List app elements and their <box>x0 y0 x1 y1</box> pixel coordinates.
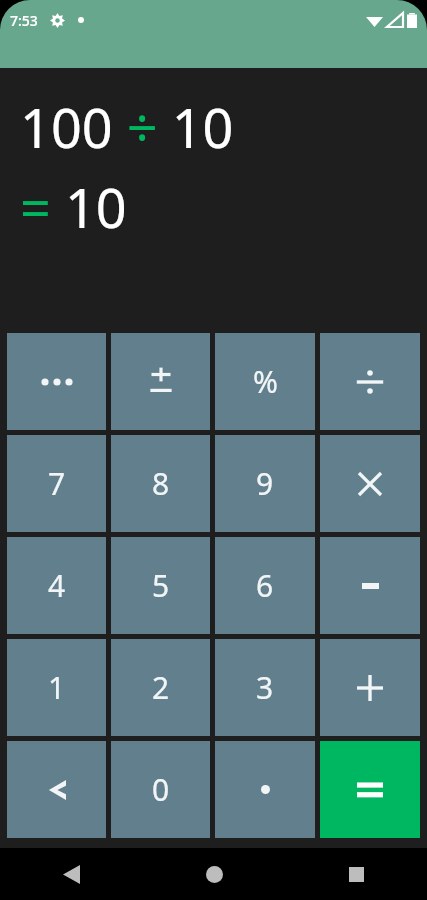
button[interactable]: Multiply <box>320 435 420 532</box>
button[interactable]: Recent apps <box>285 848 427 900</box>
staticText: = 10 <box>20 170 127 244</box>
button[interactable]: Plus <box>320 639 420 736</box>
staticText: 5 <box>152 565 170 606</box>
button[interactable]: Home <box>143 848 285 900</box>
staticText: 100 ÷ 10 <box>20 90 234 164</box>
button[interactable]: 2 <box>111 639 210 736</box>
button[interactable]: 7 <box>7 435 106 532</box>
button[interactable]: 4 <box>7 537 106 634</box>
staticText: 4 <box>48 565 66 606</box>
staticText: 8 <box>152 463 170 504</box>
button[interactable]: Divide <box>320 333 420 430</box>
button[interactable]: Equals <box>320 741 420 838</box>
button[interactable]: 6 <box>215 537 315 634</box>
button[interactable]: 0 <box>111 741 210 838</box>
button[interactable]: Minus <box>320 537 420 634</box>
button[interactable]: 9 <box>215 435 315 532</box>
button[interactable]: 5 <box>111 537 210 634</box>
button[interactable]: 8 <box>111 435 210 532</box>
button[interactable]: Decimal point <box>215 741 315 838</box>
button[interactable]: Backspace <box>7 741 106 838</box>
staticText: 9 <box>256 463 274 504</box>
staticText: % <box>253 361 278 402</box>
staticText: 3 <box>256 667 274 708</box>
button[interactable]: % <box>215 333 315 430</box>
button[interactable]: 1 <box>7 639 106 736</box>
button[interactable]: More options <box>7 333 106 430</box>
staticText: 2 <box>152 667 170 708</box>
staticText: 7 <box>48 463 66 504</box>
button[interactable]: Plus minus <box>111 333 210 430</box>
staticText: 1 <box>48 667 66 708</box>
staticText: 6 <box>256 565 274 606</box>
staticText: 7:53 <box>10 11 38 30</box>
button[interactable]: 3 <box>215 639 315 736</box>
button[interactable]: Back <box>0 848 143 900</box>
staticText: 0 <box>152 769 170 810</box>
